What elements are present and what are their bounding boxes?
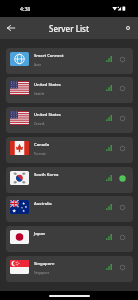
button[interactable]: South Korea bbox=[6, 167, 133, 193]
button[interactable]: Back bbox=[0, 17, 21, 39]
staticText: Server List bbox=[0, 23, 138, 34]
button[interactable]: More options bbox=[118, 17, 138, 39]
staticText: United States bbox=[34, 112, 61, 118]
staticText: United States bbox=[34, 82, 61, 88]
staticText: Australia bbox=[34, 201, 52, 207]
button[interactable]: United States bbox=[6, 77, 133, 103]
staticText: Seattle bbox=[34, 92, 45, 96]
button[interactable]: United States bbox=[6, 107, 133, 133]
button[interactable]: Canada bbox=[6, 137, 133, 163]
button[interactable]: Australia bbox=[6, 196, 133, 222]
button[interactable]: Japan bbox=[6, 226, 133, 252]
staticText: Auto bbox=[34, 63, 42, 67]
button[interactable]: Singapore bbox=[6, 256, 133, 282]
staticText: Toronto bbox=[34, 152, 46, 156]
staticText: Smart Connect bbox=[34, 53, 64, 59]
staticText: 4:38 bbox=[20, 5, 31, 12]
button[interactable]: Smart Connect bbox=[6, 48, 133, 74]
staticText: Canada bbox=[34, 142, 50, 148]
staticText: Singapore bbox=[34, 271, 50, 275]
staticText: Singapore bbox=[34, 261, 55, 267]
staticText: Japan bbox=[34, 231, 46, 237]
staticText: Zone A bbox=[34, 122, 45, 126]
staticText: South Korea bbox=[34, 172, 59, 178]
